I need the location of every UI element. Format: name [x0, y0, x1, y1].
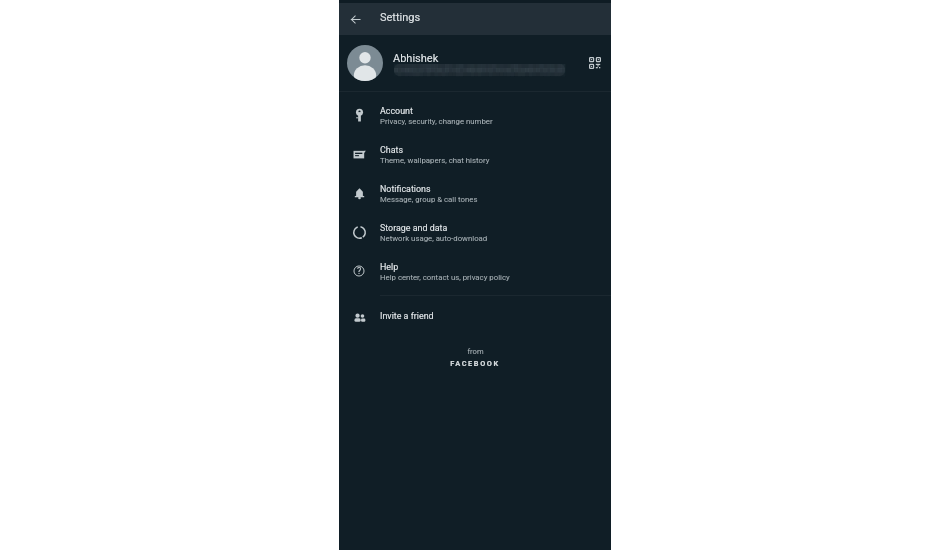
staticText: Invite a friend [380, 311, 434, 321]
staticText: Message, group & call tones [380, 195, 478, 204]
button[interactable]: Storage and data [339, 213, 611, 252]
button[interactable]: Abhishek [339, 35, 611, 91]
button[interactable]: Account [339, 96, 611, 135]
button[interactable]: Chats [339, 135, 611, 174]
staticText: Notifications [380, 184, 431, 194]
staticText: Chats [380, 145, 404, 155]
staticText: FACEBOOK [450, 359, 500, 368]
staticText: Privacy, security, change number [380, 117, 493, 126]
staticText: Theme, wallpapers, chat history [380, 156, 490, 165]
button[interactable]: Invite a friend [339, 296, 611, 335]
staticText: Network usage, auto-download [380, 234, 488, 243]
staticText: Abhishek [393, 52, 439, 65]
staticText: Account [380, 106, 413, 116]
staticText: from [467, 347, 484, 356]
button[interactable]: ? [339, 252, 611, 291]
staticText: Storage and data [380, 223, 448, 233]
staticText: Help center, contact us, privacy policy [380, 273, 510, 282]
staticText: ? [357, 266, 362, 277]
staticText: Help [380, 262, 399, 272]
button[interactable]: Notifications [339, 174, 611, 213]
staticText: Settings [380, 11, 421, 24]
button[interactable]: Back [346, 10, 364, 28]
button[interactable]: QR code [580, 48, 610, 78]
